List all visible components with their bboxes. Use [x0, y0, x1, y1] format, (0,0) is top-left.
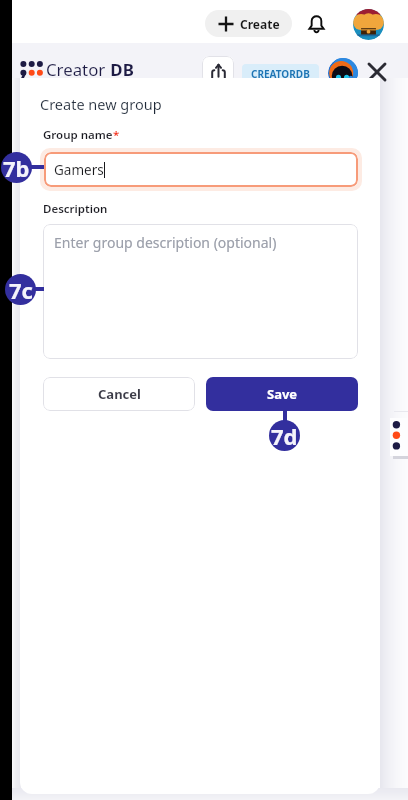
staticText: Creator — [46, 58, 106, 81]
staticText: * — [113, 127, 120, 143]
staticText: Group name — [43, 127, 113, 143]
staticText: Enter group description (optional) — [54, 233, 277, 252]
staticText: Gamers — [54, 161, 104, 179]
button[interactable]: Share — [202, 56, 234, 84]
staticText: 7b — [3, 153, 30, 183]
button[interactable]: Gamers — [44, 152, 358, 187]
button[interactable]: Cancel — [43, 377, 195, 411]
staticText: Description — [43, 201, 108, 217]
staticText: CREATORDB — [251, 67, 310, 81]
staticText: Create — [240, 16, 280, 32]
staticText: DB — [106, 58, 134, 81]
staticText: Create new group — [40, 94, 162, 114]
button[interactable]: Notifications — [304, 11, 328, 35]
button[interactable]: Save — [206, 377, 358, 411]
button[interactable]: CREATORDB — [242, 64, 319, 84]
staticText: 7d — [271, 421, 298, 451]
button[interactable]: Create — [205, 10, 292, 37]
staticText: Save — [267, 385, 298, 403]
button[interactable]: Close — [365, 60, 389, 84]
button[interactable]: Workspace avatar — [328, 58, 358, 88]
staticText: 7c — [9, 275, 33, 305]
staticText: Cancel — [98, 385, 141, 403]
button[interactable]: Enter group description (optional) — [43, 224, 358, 359]
button[interactable]: Profile — [353, 9, 384, 40]
